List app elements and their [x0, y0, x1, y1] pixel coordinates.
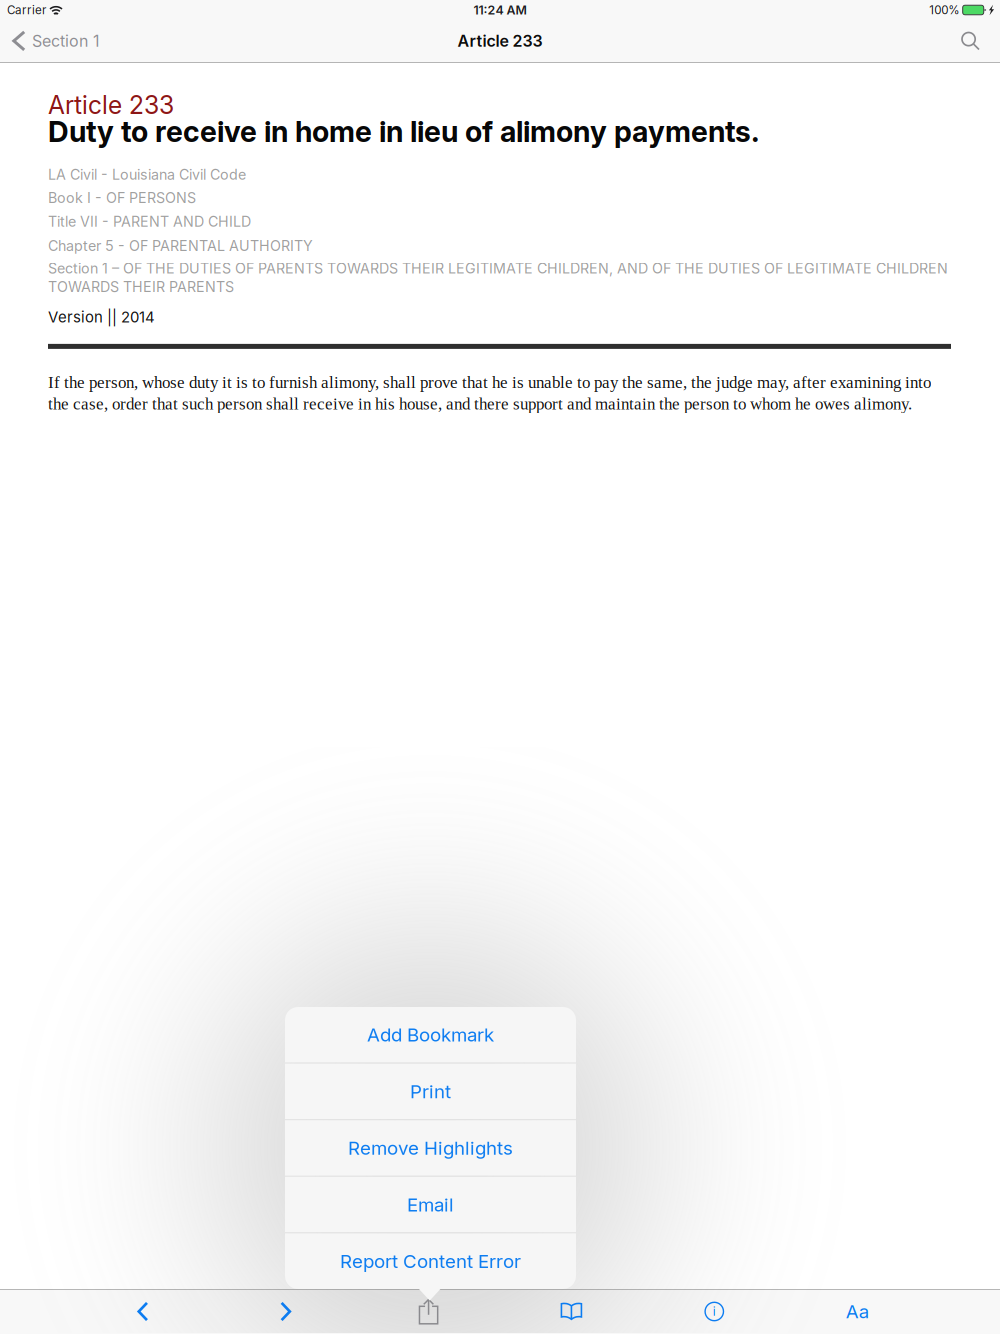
staticText: If the person, whose duty it is to furni…: [48, 373, 931, 413]
staticText: Book I - OF PERSONS: [48, 189, 196, 206]
staticText: 11:24 AM: [473, 2, 526, 17]
button[interactable]: Email: [285, 1177, 576, 1232]
button[interactable]: Remove Highlights: [285, 1120, 576, 1176]
button[interactable]: Next: [214, 1289, 357, 1334]
staticText: Add Bookmark: [367, 1023, 494, 1046]
button[interactable]: Bookmarks: [500, 1289, 643, 1334]
staticText: Chapter 5 - OF PARENTAL AUTHORITY: [48, 237, 313, 254]
staticText: Email: [407, 1193, 454, 1216]
staticText: Duty to receive in home in lieu of alimo…: [48, 114, 760, 149]
button[interactable]: Search: [943, 20, 1000, 62]
button[interactable]: Share: [357, 1289, 500, 1334]
staticText: Section 1: [32, 31, 100, 51]
staticText: Version || 2014: [48, 308, 155, 326]
button[interactable]: Previous: [71, 1289, 214, 1334]
button[interactable]: Section 1: [0, 20, 114, 62]
staticText: i: [713, 1304, 716, 1319]
staticText: Report Content Error: [340, 1250, 521, 1272]
staticText: LA Civil - Louisiana Civil Code: [48, 166, 246, 183]
button[interactable]: Info: [643, 1289, 786, 1334]
staticText: Carrier: [7, 3, 46, 17]
button[interactable]: Text size: [786, 1289, 929, 1334]
staticText: Remove Highlights: [348, 1137, 513, 1159]
staticText: Title VII - PARENT AND CHILD: [48, 213, 251, 230]
staticText: Article 233: [457, 31, 542, 51]
staticText: Article 233: [48, 90, 174, 120]
button[interactable]: Report Content Error: [285, 1233, 576, 1289]
button[interactable]: Add Bookmark: [285, 1007, 576, 1063]
staticText: Print: [410, 1080, 451, 1103]
staticText: Aa: [846, 1300, 869, 1323]
staticText: Section 1 – OF THE DUTIES OF PARENTS TOW…: [48, 260, 948, 295]
button[interactable]: Print: [285, 1064, 576, 1119]
staticText: 100%: [929, 3, 959, 17]
